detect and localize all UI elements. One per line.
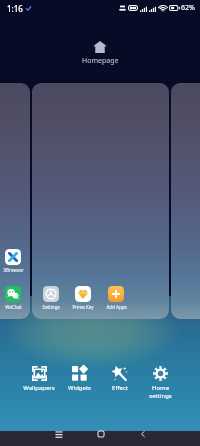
button[interactable]: Widgets [59, 364, 99, 404]
staticText: Prime Key [72, 304, 94, 310]
staticText: 62% [181, 3, 195, 13]
staticText: Widgets [68, 384, 91, 392]
staticText: WeChat [5, 304, 22, 310]
staticText: Add Apps [106, 304, 127, 310]
staticText: Effect [112, 384, 128, 392]
button[interactable]: WeChat [0, 286, 26, 310]
button[interactable]: XBrowser [0, 249, 26, 273]
staticText: Wallpapers [23, 384, 55, 392]
button[interactable]: Prime Key [70, 286, 96, 310]
button[interactable]: Effect [99, 364, 140, 404]
button[interactable]: Back [138, 429, 147, 438]
staticText: Settings [42, 304, 60, 310]
button[interactable]: Home [96, 429, 105, 438]
button[interactable]: Home settings [140, 364, 181, 404]
button[interactable]: Next page [171, 83, 200, 319]
button[interactable]: Wallpapers [19, 364, 59, 404]
staticText: XBrowser [3, 267, 24, 273]
staticText: Homepage [82, 56, 119, 66]
button[interactable]: Homepage [0, 41, 200, 66]
button[interactable]: Settings [38, 286, 64, 310]
staticText: 1:16 [7, 3, 23, 14]
button[interactable]: Home screen preview [32, 83, 169, 319]
button[interactable]: Recents [54, 429, 63, 438]
button[interactable]: Add Apps [103, 286, 129, 310]
button[interactable]: Previous page [0, 83, 30, 319]
staticText: Home settings [149, 384, 172, 400]
